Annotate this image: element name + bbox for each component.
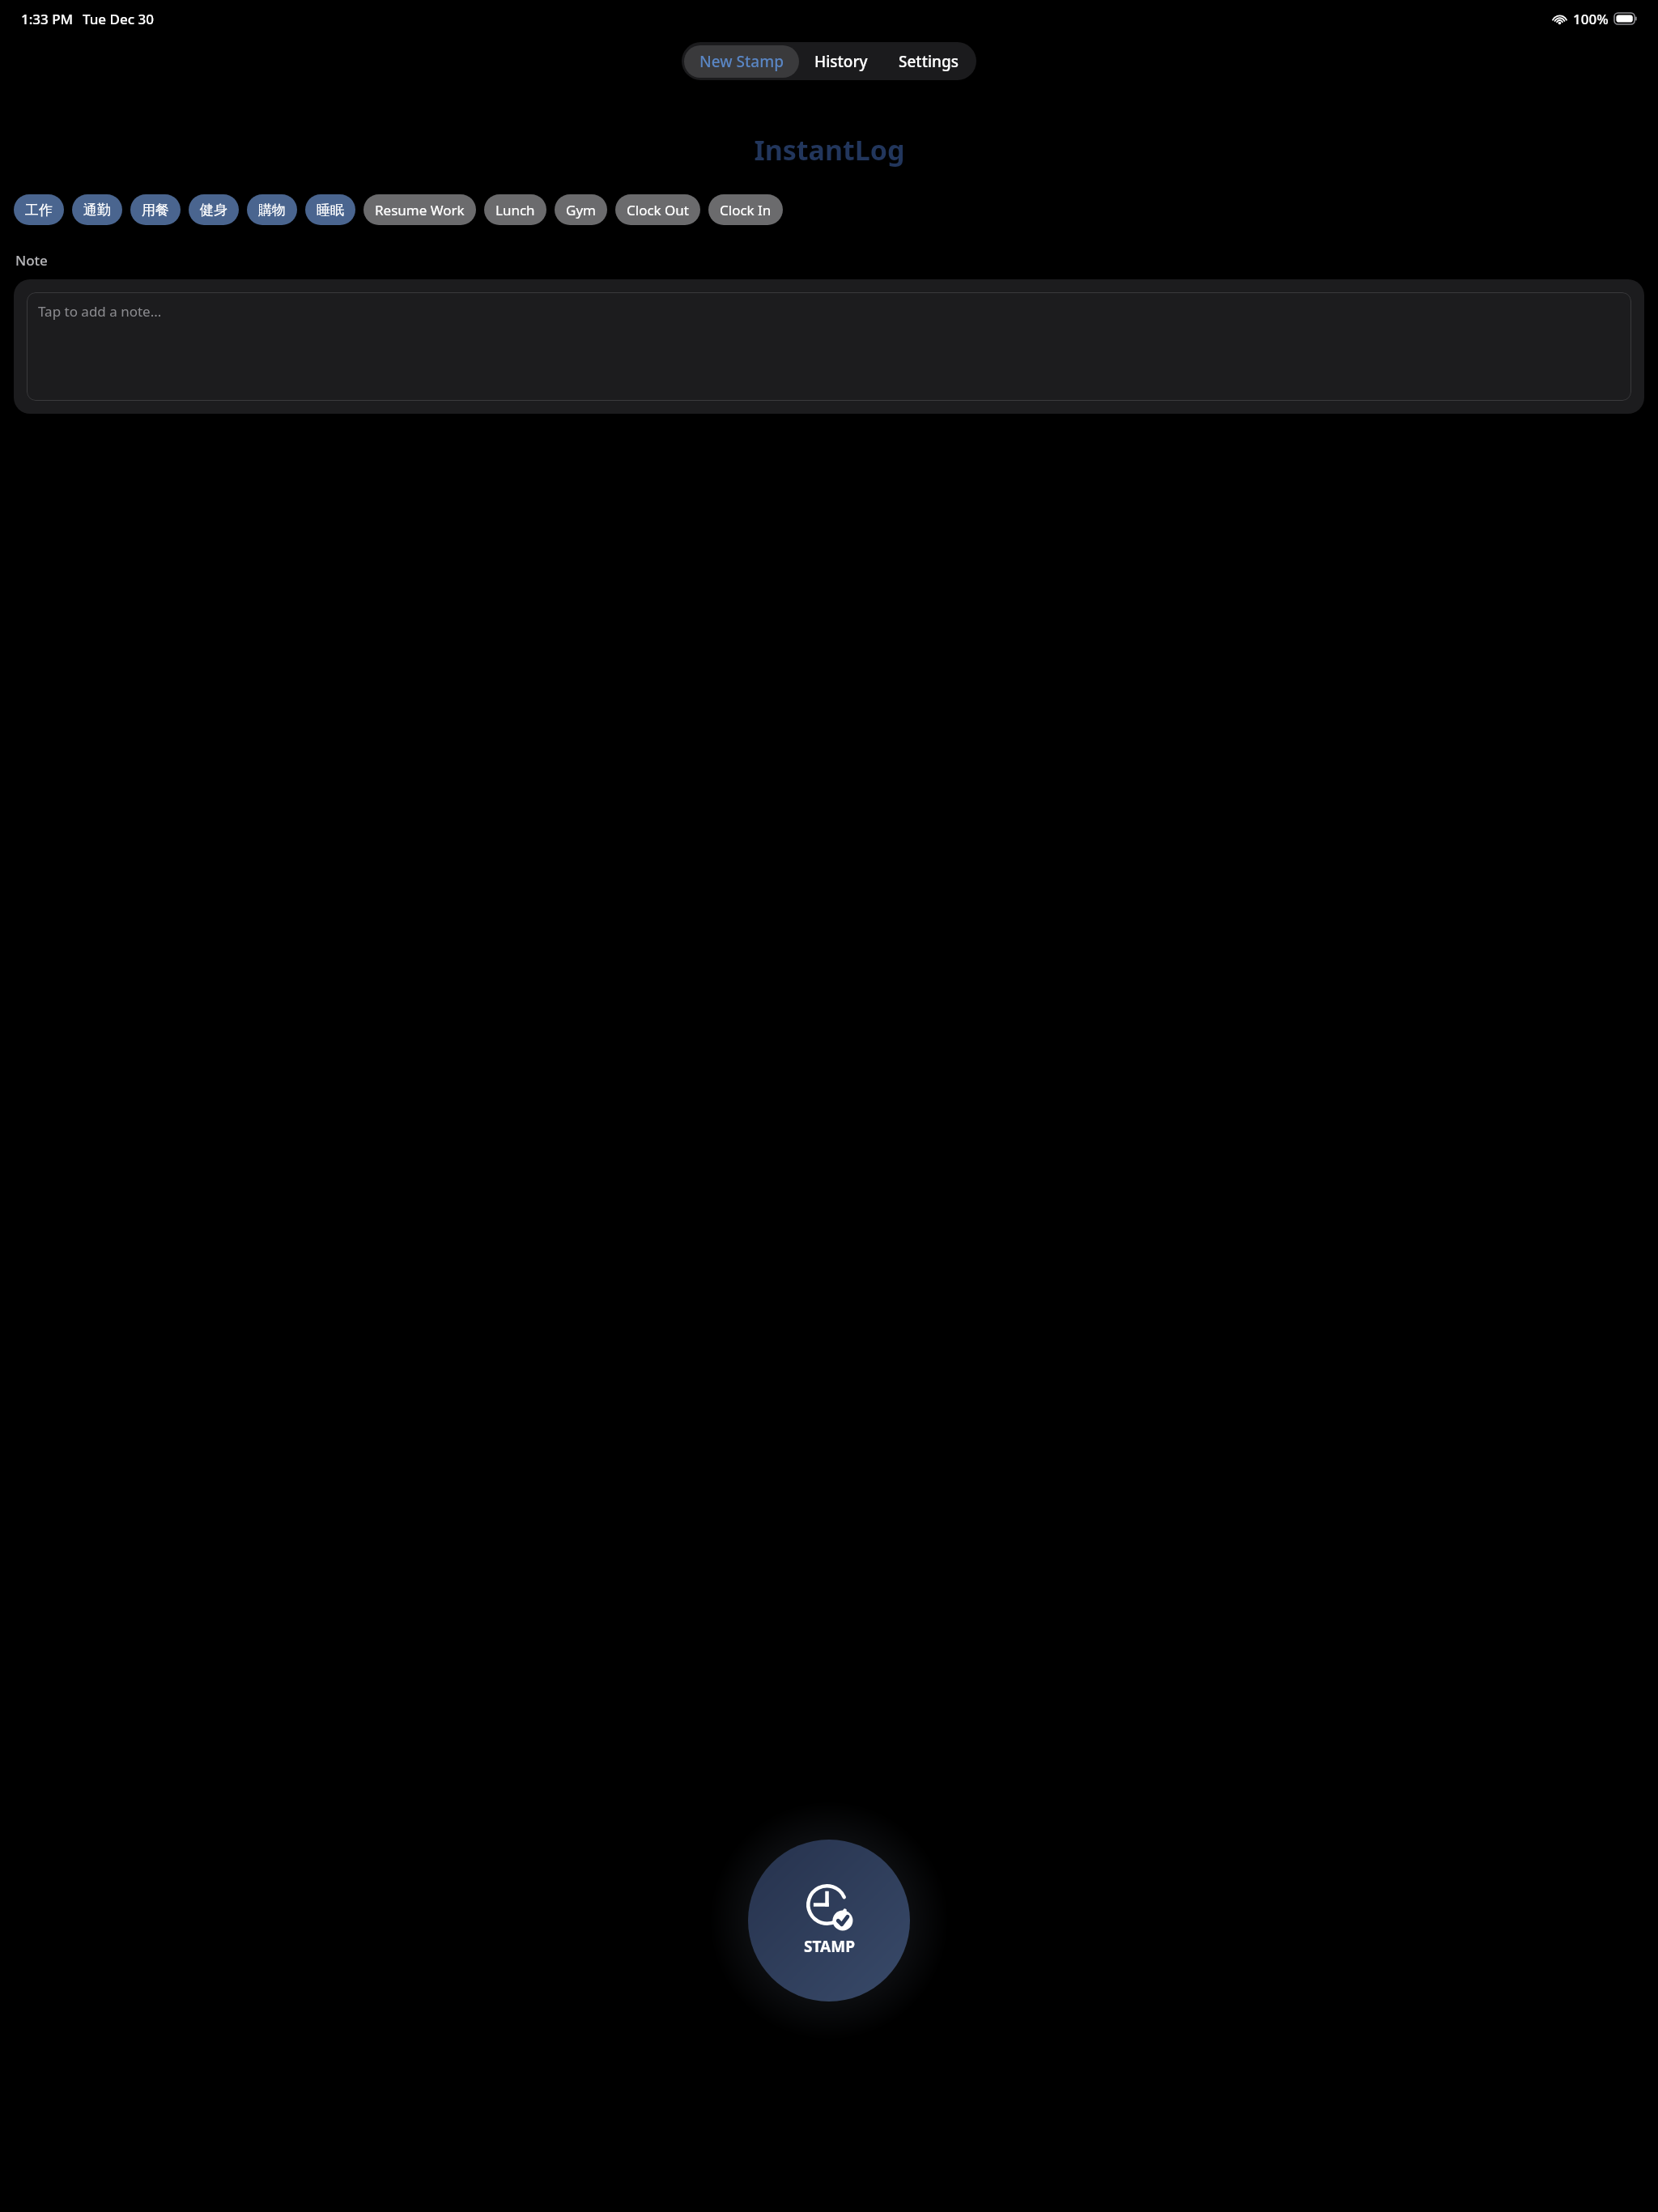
staticText: Tap to add a note... [38, 302, 162, 321]
button[interactable]: Clock Out [615, 194, 700, 225]
button[interactable]: Tap to add a note... [27, 292, 1631, 401]
staticText: 健身 [200, 202, 227, 219]
button[interactable]: History [799, 45, 883, 78]
staticText: 用餐 [142, 202, 169, 219]
staticText: InstantLog [754, 131, 905, 168]
button[interactable]: 用餐 [130, 194, 181, 225]
staticText: 通勤 [83, 202, 111, 219]
staticText: Lunch [495, 201, 535, 219]
staticText: 睡眠 [317, 202, 344, 219]
button[interactable]: New Stamp [684, 45, 799, 78]
button[interactable]: Settings [883, 45, 974, 78]
staticText: 100% [1573, 10, 1609, 28]
staticText: Clock In [720, 201, 772, 219]
button[interactable]: Resume Work [363, 194, 476, 225]
button[interactable]: 睡眠 [305, 194, 355, 225]
staticText: Resume Work [375, 201, 465, 219]
staticText: 工作 [25, 202, 53, 219]
button[interactable]: 通勤 [72, 194, 122, 225]
button[interactable]: 健身 [189, 194, 239, 225]
staticText: Clock Out [627, 201, 689, 219]
button[interactable]: Lunch [484, 194, 546, 225]
staticText: 購物 [258, 202, 286, 219]
staticText: Settings [899, 51, 959, 72]
staticText: 1:33 PM [21, 10, 74, 28]
staticText: New Stamp [699, 51, 784, 72]
button[interactable]: Stamp [748, 1840, 910, 2001]
button[interactable]: 購物 [247, 194, 297, 225]
staticText: Note [15, 251, 48, 270]
staticText: Gym [566, 201, 596, 219]
staticText: History [814, 51, 868, 72]
staticText: Tue Dec 30 [83, 10, 154, 28]
button[interactable]: Clock In [708, 194, 783, 225]
button[interactable]: 工作 [14, 194, 64, 225]
button[interactable]: Gym [555, 194, 607, 225]
staticText: STAMP [804, 1936, 855, 1957]
